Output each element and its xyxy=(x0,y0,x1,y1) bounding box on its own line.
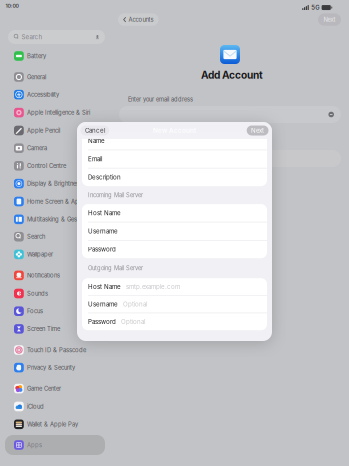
button[interactable]: Next xyxy=(318,13,341,26)
staticText: Apple Pencil xyxy=(27,127,60,134)
staticText: iCloud xyxy=(27,403,44,410)
staticText: Battery xyxy=(27,52,46,60)
staticText: Username xyxy=(88,227,118,235)
staticText: Accounts xyxy=(129,16,154,23)
staticText: Search xyxy=(22,33,43,41)
button[interactable]: Camera xyxy=(0,141,111,155)
button[interactable]: iCloud xyxy=(0,399,111,413)
button[interactable]: Wallet & Apple Pay xyxy=(0,417,111,431)
staticText: smtp.example.com xyxy=(126,283,180,290)
button[interactable]: Sounds xyxy=(0,286,111,300)
staticText: Host Name xyxy=(88,209,121,217)
button[interactable]: Notifications xyxy=(0,268,111,282)
button[interactable]: Cancel xyxy=(80,125,109,135)
button[interactable]: Control Centre xyxy=(0,159,111,173)
staticText: General xyxy=(27,73,46,81)
staticText: Enter your email address xyxy=(128,96,193,103)
staticText: Search xyxy=(27,233,45,240)
staticText: Description xyxy=(88,173,121,181)
staticText: Notifications xyxy=(27,272,60,279)
staticText: Apps xyxy=(27,441,42,449)
button[interactable]: Next xyxy=(247,125,268,135)
button[interactable]: General xyxy=(0,70,111,84)
button[interactable]: Game Center xyxy=(0,382,111,396)
button[interactable]: Search xyxy=(0,230,111,244)
staticText: Wallpaper xyxy=(27,251,53,258)
button[interactable]: Apple Pencil xyxy=(0,123,111,137)
staticText: Next xyxy=(323,16,335,23)
staticText: Name xyxy=(88,137,105,144)
staticText: Cancel xyxy=(85,127,105,134)
button[interactable]: Apps xyxy=(5,435,105,455)
staticText: Display & Brightness xyxy=(27,180,82,187)
staticText: 5G xyxy=(311,4,319,11)
button[interactable]: Display & Brightness xyxy=(0,177,111,191)
button[interactable]: Focus xyxy=(0,304,111,318)
button[interactable]: Battery xyxy=(0,49,111,63)
staticText: New Account xyxy=(153,127,196,134)
button[interactable]: Home Screen & App Library xyxy=(0,194,111,208)
staticText: Accessibility xyxy=(27,91,59,98)
staticText: 10:00 xyxy=(5,3,18,9)
staticText: Incoming Mail Server xyxy=(88,192,143,198)
button[interactable]: Multitasking & Gestures xyxy=(0,212,111,226)
staticText: Email xyxy=(88,155,102,163)
staticText: Camera xyxy=(27,145,47,152)
staticText: Outgoing Mail Server xyxy=(88,265,143,272)
staticText: Sounds xyxy=(27,290,48,297)
button[interactable]: Screen Time xyxy=(0,322,111,336)
staticText: Screen Time xyxy=(27,325,60,332)
button[interactable]: Privacy & Security xyxy=(0,361,111,375)
staticText: Wallet & Apple Pay xyxy=(27,421,78,428)
staticText: Apple Intelligence & Siri xyxy=(27,109,90,116)
staticText: Optional xyxy=(123,300,147,308)
staticText: Add Account xyxy=(201,69,263,81)
staticText: Touch ID & Passcode xyxy=(27,346,86,354)
staticText: Next xyxy=(251,127,264,134)
staticText: Focus xyxy=(27,308,43,315)
button[interactable]: Wallpaper xyxy=(0,247,111,261)
staticText: Home Screen & App Library xyxy=(27,198,103,205)
button[interactable]: Accounts xyxy=(118,13,159,26)
button[interactable]: Accessibility xyxy=(0,88,111,102)
button[interactable]: Apple Intelligence & Siri xyxy=(0,106,111,120)
staticText: Password xyxy=(88,246,116,253)
staticText: Password xyxy=(88,318,116,325)
staticText: Optional xyxy=(121,318,145,325)
staticText: Multitasking & Gestures xyxy=(27,216,90,223)
staticText: Game Center xyxy=(27,385,61,392)
staticText: Privacy & Security xyxy=(27,364,75,371)
button[interactable]: Touch ID & Passcode xyxy=(0,343,111,357)
staticText: Username xyxy=(88,300,118,308)
staticText: Control Centre xyxy=(27,162,66,169)
staticText: Host Name xyxy=(88,283,121,290)
